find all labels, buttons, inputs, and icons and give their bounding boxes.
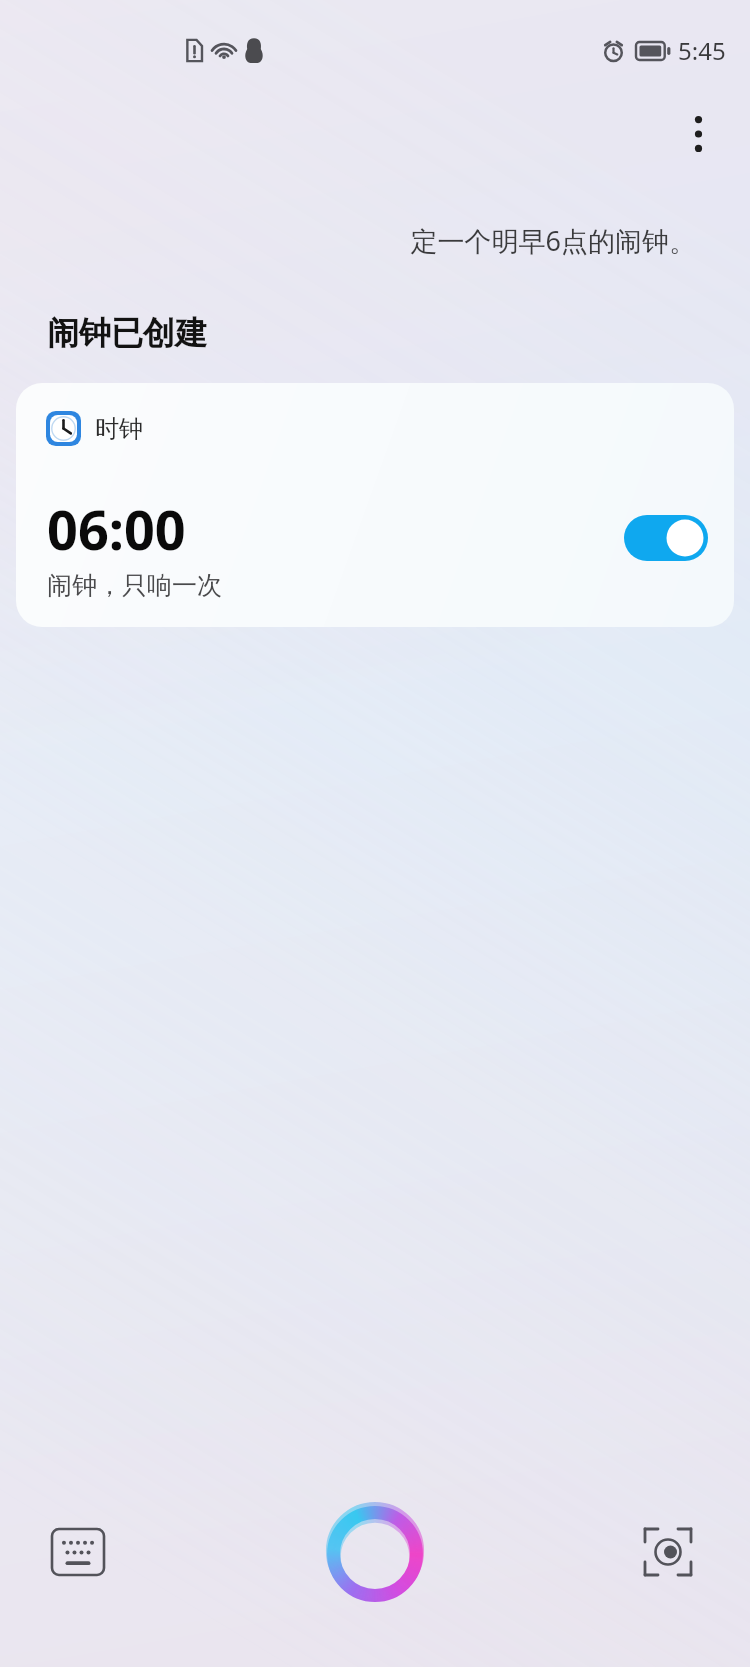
staticText: 06:00	[47, 492, 186, 566]
button[interactable]: Scan with camera	[626, 1510, 710, 1594]
button[interactable]: 时钟	[16, 383, 734, 627]
button[interactable]: Voice assistant	[305, 1484, 445, 1624]
staticText: 闹钟，只响一次	[47, 570, 222, 601]
staticText: 5:45	[678, 34, 726, 67]
staticText: 定一个明早6点的闹钟。	[410, 222, 696, 259]
staticText: 闹钟已创建	[47, 313, 207, 353]
button[interactable]: More options	[660, 96, 736, 172]
button[interactable]: Keyboard input	[36, 1510, 120, 1594]
staticText: 时钟	[95, 414, 143, 444]
button[interactable]: Alarm enabled toggle	[618, 509, 714, 567]
